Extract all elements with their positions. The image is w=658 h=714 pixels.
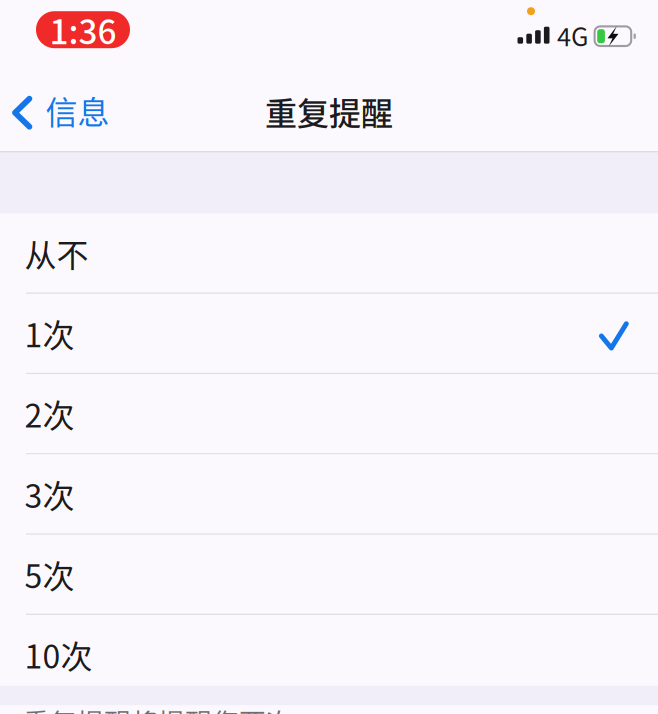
button[interactable]: 从不: [0, 214, 658, 294]
staticText: 重复提醒: [265, 88, 393, 134]
staticText: 从不: [24, 230, 88, 276]
staticText: 3次: [24, 471, 74, 517]
staticText: 2次: [24, 390, 74, 437]
button[interactable]: 5次: [0, 535, 658, 615]
button[interactable]: 10次: [0, 615, 658, 695]
staticText: 重复提醒将提醒您两次: [23, 702, 293, 714]
button[interactable]: 3次: [0, 454, 658, 535]
staticText: 信息: [45, 87, 109, 133]
staticText: 4G: [557, 17, 588, 54]
staticText: 10次: [24, 631, 92, 678]
button[interactable]: 1次: [0, 294, 658, 374]
button[interactable]: 2次: [0, 374, 658, 454]
button[interactable]: 信息: [0, 83, 121, 141]
staticText: 5次: [24, 551, 74, 597]
staticText: 1次: [24, 310, 74, 356]
staticText: 1:36: [49, 6, 116, 54]
